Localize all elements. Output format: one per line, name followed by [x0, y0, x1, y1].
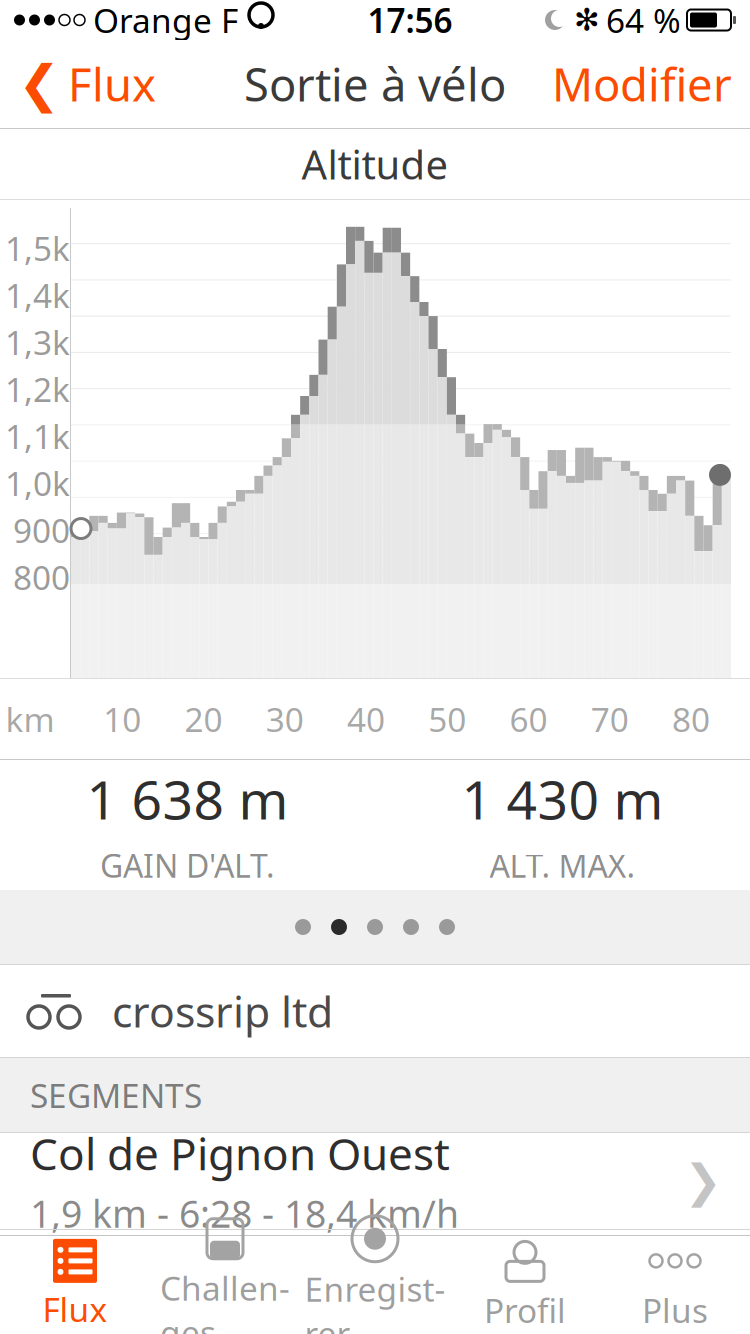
- button[interactable]: Enregistrer: [300, 1237, 450, 1333]
- staticText: Flux: [68, 54, 156, 114]
- staticText: ❮: [18, 55, 60, 113]
- staticText: 30: [266, 697, 304, 741]
- staticText: 80: [672, 697, 710, 741]
- staticText: km: [5, 697, 54, 741]
- staticText: ALT. MAX.: [489, 844, 635, 887]
- staticText: 1,1k: [5, 414, 70, 458]
- button[interactable]: Modifier: [534, 40, 750, 128]
- staticText: 40: [347, 697, 385, 741]
- staticText: GAIN D'ALT.: [100, 844, 275, 887]
- staticText: 64 %: [606, 0, 681, 42]
- staticText: SEGMENTS: [30, 1073, 202, 1117]
- staticText: 50: [428, 697, 466, 741]
- staticText: Modifier: [552, 54, 732, 114]
- staticText: 10: [103, 697, 141, 741]
- staticText: crossrip ltd: [112, 983, 333, 1039]
- staticText: 17:56: [367, 0, 452, 42]
- button[interactable]: Flux: [0, 1237, 150, 1333]
- staticText: 1 638 m: [86, 763, 288, 834]
- staticText: Sortie à vélo: [244, 54, 506, 114]
- staticText: Plus: [642, 1288, 708, 1332]
- staticText: 800: [13, 555, 70, 599]
- staticText: Flux: [42, 1287, 107, 1331]
- staticText: ✻: [574, 3, 600, 37]
- button[interactable]: Plus: [600, 1237, 750, 1333]
- staticText: 70: [591, 697, 629, 741]
- staticText: Orange F: [93, 0, 238, 42]
- staticText: 1 430 m: [461, 763, 663, 834]
- staticText: Challenges: [160, 1266, 290, 1334]
- staticText: ❯: [684, 1155, 722, 1207]
- button[interactable]: Profil: [450, 1237, 600, 1333]
- staticText: Altitude: [301, 137, 448, 190]
- staticText: Enregistrer: [304, 1267, 445, 1334]
- button[interactable]: crossrip ltd: [0, 965, 750, 1057]
- staticText: 60: [509, 697, 547, 741]
- staticText: 1,0k: [5, 461, 70, 505]
- button[interactable]: Col de Pignon Ouest: [0, 1133, 750, 1229]
- button[interactable]: ❮: [0, 40, 174, 128]
- staticText: 900: [13, 508, 70, 552]
- staticText: 20: [184, 697, 222, 741]
- button[interactable]: Challenges: [150, 1237, 300, 1333]
- staticText: 1,5k: [5, 226, 70, 270]
- staticText: Col de Pignon Ouest: [30, 1124, 450, 1182]
- staticText: 1,3k: [5, 320, 70, 364]
- staticText: 1,4k: [5, 273, 70, 317]
- staticText: Profil: [484, 1288, 566, 1332]
- staticText: 1,2k: [5, 367, 70, 411]
- staticText: 1,9 km - 6:28 - 18,4 km/h: [30, 1188, 459, 1238]
